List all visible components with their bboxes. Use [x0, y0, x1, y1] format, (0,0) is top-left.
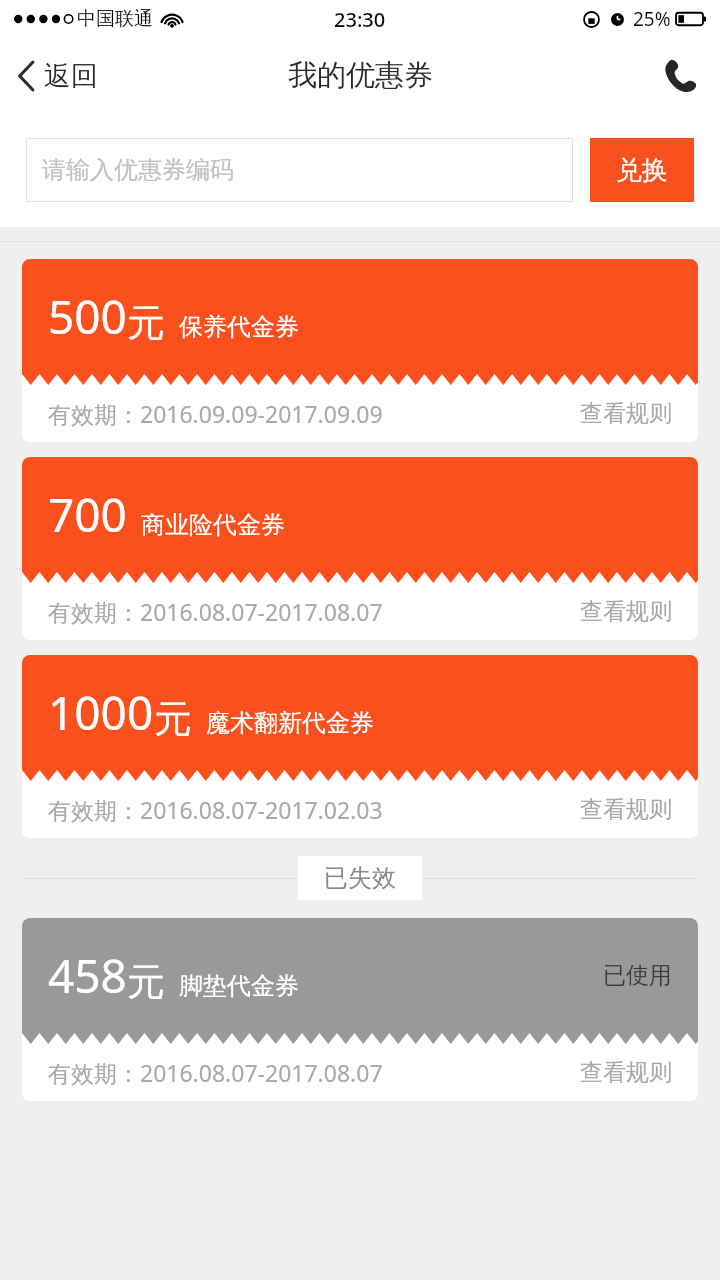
- staticText: 中国联通: [77, 7, 153, 31]
- staticText: 700: [48, 483, 127, 546]
- staticText: 商业险代金券: [141, 510, 285, 540]
- button[interactable]: 查看规则: [554, 583, 698, 640]
- button[interactable]: 查看规则: [554, 1044, 698, 1101]
- staticText: 元: [127, 299, 165, 347]
- staticText: 请输入优惠券编码: [42, 155, 234, 185]
- staticText: 保养代金券: [179, 312, 299, 342]
- staticText: 25%: [633, 6, 671, 32]
- button[interactable]: 请输入优惠券编码: [26, 138, 573, 202]
- staticText: 有效期：2016.09.09-2017.09.09: [48, 398, 383, 429]
- staticText: 已使用: [603, 961, 672, 990]
- button[interactable]: 1000: [22, 655, 698, 838]
- staticText: 已失效: [324, 863, 396, 893]
- staticText: 元: [154, 695, 192, 743]
- staticText: 1000: [48, 681, 154, 744]
- button[interactable]: Call: [640, 38, 720, 113]
- staticText: 有效期：2016.08.07-2017.08.07: [48, 596, 383, 627]
- staticText: 23:30: [334, 6, 386, 33]
- staticText: 我的优惠券: [288, 57, 433, 94]
- staticText: 魔术翻新代金券: [206, 708, 374, 738]
- staticText: 兑换: [616, 154, 668, 187]
- button[interactable]: 返回: [0, 38, 116, 113]
- staticText: 有效期：2016.08.07-2017.08.07: [48, 1057, 383, 1088]
- button[interactable]: 查看规则: [554, 385, 698, 442]
- staticText: 有效期：2016.08.07-2017.02.03: [48, 794, 383, 825]
- button[interactable]: 500: [22, 259, 698, 442]
- staticText: 脚垫代金券: [179, 971, 299, 1001]
- button[interactable]: 兑换: [590, 138, 694, 202]
- button[interactable]: 458: [22, 918, 698, 1101]
- staticText: 查看规则: [580, 399, 672, 428]
- staticText: 元: [127, 958, 165, 1006]
- staticText: 返回: [44, 59, 98, 93]
- button[interactable]: 700: [22, 457, 698, 640]
- staticText: 查看规则: [580, 1058, 672, 1087]
- staticText: 458: [48, 944, 127, 1007]
- staticText: 查看规则: [580, 597, 672, 626]
- staticText: 500: [48, 285, 127, 348]
- button[interactable]: 查看规则: [554, 781, 698, 838]
- staticText: 查看规则: [580, 795, 672, 824]
